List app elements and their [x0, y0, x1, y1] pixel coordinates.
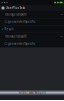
staticText: geosender/Specific — [8, 20, 35, 23]
button[interactable]: geosender/Specific — [0, 40, 64, 47]
button[interactable]: /storage/sdcard0 — [0, 11, 64, 18]
staticText: geosender/Specific — [8, 42, 35, 45]
button[interactable]: /storage/sdcard0 — [0, 33, 64, 40]
staticText: Result — [4, 27, 13, 31]
button[interactable]: Folder Tasks Widgets — [0, 90, 64, 95]
button[interactable]: geosender/Specific — [0, 18, 64, 26]
staticText: ✓ — [1, 28, 3, 31]
staticText: /storage/sdcard0 — [5, 35, 27, 38]
staticText: /storage/sdcard0 — [5, 13, 27, 16]
staticText: Folder Tasks Widgets — [18, 91, 45, 94]
button[interactable]: ✓ — [0, 26, 64, 33]
staticText: UberPlus Task — [6, 6, 25, 10]
